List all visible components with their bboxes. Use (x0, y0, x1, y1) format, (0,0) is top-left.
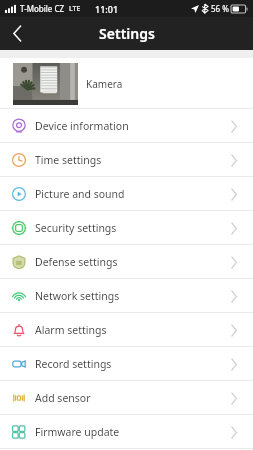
staticText: Time settings (35, 153, 102, 167)
button[interactable]: Firmware update (0, 415, 253, 449)
staticText: LTE (69, 4, 81, 14)
button[interactable]: Back (0, 17, 34, 50)
button[interactable]: Device information (0, 109, 253, 143)
staticText: Record settings (35, 357, 112, 371)
staticText: Network settings (35, 289, 120, 303)
button[interactable]: Kamera (0, 58, 253, 109)
button[interactable]: Picture and sound (0, 177, 253, 211)
staticText: Picture and sound (35, 187, 125, 201)
staticText: 11:01 (95, 3, 119, 15)
button[interactable]: Defense settings (0, 245, 253, 279)
button[interactable]: Alarm settings (0, 313, 253, 347)
staticText: Alarm settings (35, 323, 107, 337)
staticText: Settings (99, 24, 155, 43)
staticText: Security settings (35, 221, 117, 235)
staticText: 56 % (211, 3, 229, 14)
staticText: Kamera (86, 77, 123, 91)
staticText: Add sensor (35, 391, 91, 405)
button[interactable]: Time settings (0, 143, 253, 177)
button[interactable]: Add sensor (0, 381, 253, 415)
button[interactable]: Network settings (0, 279, 253, 313)
button[interactable]: Record settings (0, 347, 253, 381)
staticText: Defense settings (35, 255, 118, 269)
staticText: Device information (35, 119, 129, 133)
button[interactable]: Security settings (0, 211, 253, 245)
staticText: T-Mobile CZ (20, 3, 65, 14)
staticText: Firmware update (35, 425, 120, 439)
